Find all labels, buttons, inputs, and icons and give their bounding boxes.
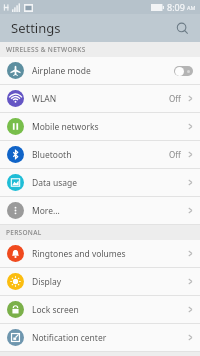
staticText: Display: [32, 276, 61, 288]
staticText: More...: [32, 205, 60, 217]
staticText: WIRELESS & NETWORKS: [6, 45, 86, 54]
staticText: AM: [187, 4, 196, 11]
button[interactable]: Data usage: [0, 169, 200, 196]
button[interactable]: Lock screen: [0, 296, 200, 323]
button[interactable]: More...: [0, 197, 200, 224]
staticText: Data usage: [32, 177, 78, 189]
staticText: Settings: [11, 19, 61, 37]
staticText: Airplane mode: [32, 65, 91, 77]
button[interactable]: Search: [170, 16, 194, 40]
button[interactable]: Airplane mode toggle: [174, 66, 193, 76]
button[interactable]: Notification center: [0, 324, 200, 351]
button[interactable]: WLAN: [0, 85, 200, 112]
button[interactable]: Mobile networks: [0, 113, 200, 140]
staticText: Mobile networks: [32, 121, 99, 133]
button[interactable]: Ringtones and volumes: [0, 240, 200, 267]
staticText: Notification center: [32, 332, 107, 344]
button[interactable]: Bluetooth: [0, 141, 200, 168]
staticText: Lock screen: [32, 304, 79, 316]
staticText: PERSONAL: [6, 228, 42, 237]
button[interactable]: Airplane mode: [0, 57, 200, 84]
staticText: Ringtones and volumes: [32, 248, 126, 260]
staticText: 8:09: [167, 1, 185, 13]
staticText: Off: [169, 149, 181, 160]
button[interactable]: Display: [0, 268, 200, 295]
staticText: WLAN: [32, 93, 57, 105]
staticText: Bluetooth: [32, 149, 72, 161]
staticText: Off: [169, 93, 181, 104]
